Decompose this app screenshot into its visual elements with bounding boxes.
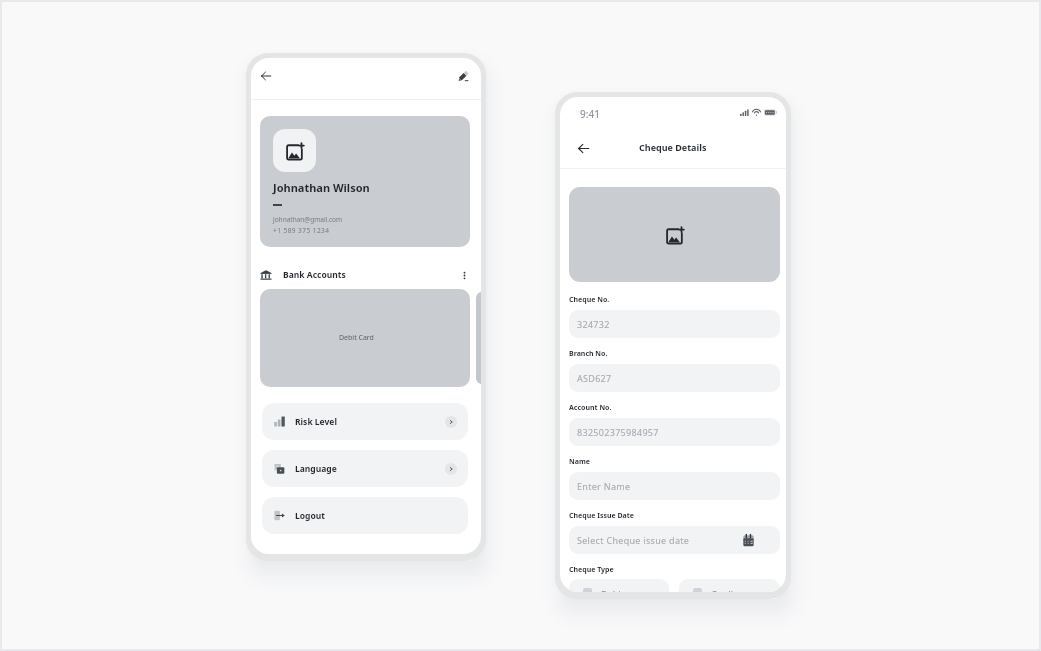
- button[interactable]: Back: [574, 139, 592, 157]
- staticText: +1 589 375 1234: [273, 226, 330, 235]
- button[interactable]: Add cheque image: [569, 187, 780, 282]
- staticText: Johnathan Wilson: [273, 180, 370, 195]
- staticText: Risk Level: [295, 416, 337, 428]
- staticText: Debit Card: [339, 333, 374, 343]
- button[interactable]: Back: [257, 67, 275, 85]
- button[interactable]: ASD627: [569, 364, 780, 392]
- button[interactable]: Select Cheque issue date: [569, 526, 780, 554]
- button[interactable]: Edit profile: [454, 67, 472, 85]
- staticText: Select Cheque issue date: [577, 534, 690, 546]
- staticText: 9:41: [580, 107, 600, 121]
- button[interactable]: 832502375984957: [569, 418, 780, 446]
- staticText: Cheque Details: [639, 141, 707, 153]
- button[interactable]: Credit: [679, 579, 780, 592]
- staticText: Account No.: [569, 403, 612, 413]
- staticText: Cheque No.: [569, 295, 610, 305]
- button[interactable]: 324732: [569, 310, 780, 338]
- button[interactable]: Language: [262, 450, 468, 487]
- button[interactable]: Debit Card: [260, 289, 470, 387]
- button[interactable]: Enter Name: [569, 472, 780, 500]
- button[interactable]: Pick date: [742, 534, 755, 547]
- button[interactable]: Johnathan Wilson: [260, 116, 470, 247]
- staticText: johnathan@gmail.com: [273, 215, 343, 224]
- button[interactable]: Logout: [262, 497, 468, 534]
- staticText: Logout: [295, 510, 325, 522]
- staticText: Branch No.: [569, 349, 608, 359]
- staticText: Credit: [711, 588, 737, 592]
- staticText: ASD627: [577, 372, 612, 384]
- staticText: Name: [569, 457, 590, 467]
- button[interactable]: Debit: [569, 579, 669, 592]
- staticText: Debit: [601, 588, 624, 592]
- staticText: Cheque Issue Date: [569, 511, 635, 521]
- button[interactable]: Risk Level: [262, 403, 468, 440]
- staticText: 832502375984957: [577, 426, 659, 438]
- staticText: Language: [295, 463, 337, 475]
- staticText: Enter Name: [577, 480, 631, 492]
- staticText: Bank Accounts: [283, 269, 346, 281]
- staticText: Cheque Type: [569, 565, 614, 575]
- button[interactable]: More options: [457, 268, 471, 282]
- staticText: 324732: [577, 318, 610, 330]
- button[interactable]: Next card: [476, 292, 481, 384]
